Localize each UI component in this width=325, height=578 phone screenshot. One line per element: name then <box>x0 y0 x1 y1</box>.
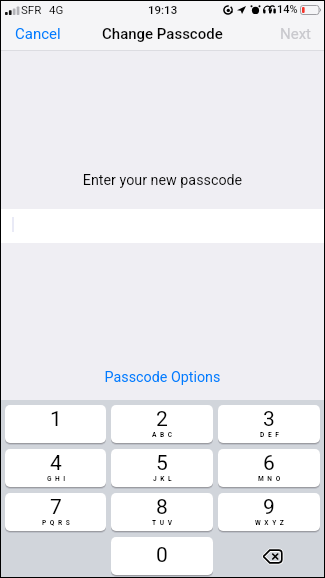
staticText: 3 <box>263 407 275 432</box>
staticText: 0 <box>156 543 168 568</box>
button[interactable]: 6 <box>218 449 320 487</box>
staticText: 9 <box>263 495 275 520</box>
button[interactable]: Cancel <box>1 19 69 49</box>
staticText: 1 <box>50 407 62 432</box>
button[interactable]: 5 <box>111 449 213 487</box>
staticText: 14% <box>277 3 298 16</box>
button[interactable]: 2 <box>111 405 213 443</box>
button[interactable]: 8 <box>111 493 213 531</box>
button[interactable]: Next <box>272 19 324 49</box>
button[interactable]: 7 <box>5 493 106 531</box>
staticText: MNO <box>258 475 284 483</box>
staticText: GHI <box>47 475 69 483</box>
button[interactable]: 3 <box>218 405 320 443</box>
button[interactable]: 0 <box>111 537 213 575</box>
button[interactable]: 9 <box>218 493 320 531</box>
staticText: 4G <box>49 3 64 16</box>
staticText: 19:13 <box>148 3 178 16</box>
button[interactable]: 1 <box>5 405 106 443</box>
staticText: WXYZ <box>255 519 288 527</box>
staticText: 4 <box>50 451 62 476</box>
button[interactable]: Passcode Options <box>1 369 324 386</box>
button[interactable]: Delete <box>218 537 320 575</box>
staticText: TUV <box>152 519 176 527</box>
staticText: ABC <box>152 431 176 439</box>
staticText: JKL <box>153 475 176 483</box>
staticText: 5 <box>156 451 168 476</box>
button[interactable]: 4 <box>5 449 106 487</box>
staticText: Change Passcode <box>102 25 223 43</box>
staticText: 6 <box>263 451 275 476</box>
staticText: Enter your new passcode <box>1 172 324 189</box>
staticText: 2 <box>156 407 168 432</box>
staticText: 8 <box>156 495 168 520</box>
staticText: DEF <box>260 431 283 439</box>
staticText: SFR <box>21 3 42 16</box>
staticText: PQRS <box>42 519 74 527</box>
staticText: 7 <box>50 495 62 520</box>
